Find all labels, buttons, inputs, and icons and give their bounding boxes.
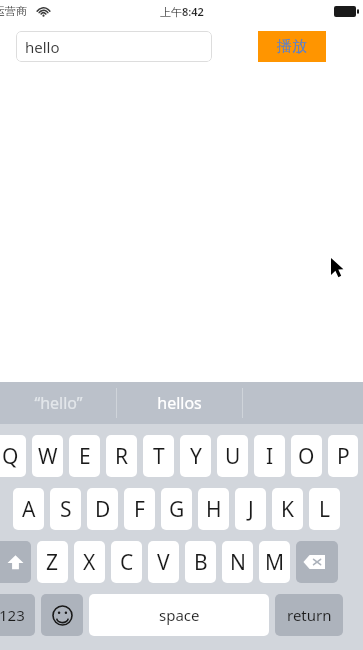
staticText: Q: [2, 442, 19, 471]
button[interactable]: O: [291, 435, 322, 477]
staticText: P: [337, 442, 350, 471]
staticText: N: [230, 548, 246, 577]
staticText: hello: [25, 37, 60, 57]
staticText: Z: [46, 548, 59, 577]
staticText: W: [38, 442, 58, 471]
staticText: V: [157, 548, 170, 577]
button[interactable]: return: [275, 594, 343, 636]
button[interactable]: U: [217, 435, 248, 477]
staticText: J: [248, 495, 254, 524]
staticText: K: [281, 495, 294, 524]
button[interactable]: Emoji keyboard: [41, 594, 83, 636]
button[interactable]: Backspace: [296, 541, 338, 583]
staticText: U: [225, 442, 241, 471]
button[interactable]: space: [89, 594, 269, 636]
button[interactable]: “hello”: [0, 382, 116, 424]
staticText: F: [134, 495, 145, 524]
staticText: G: [169, 495, 185, 524]
staticText: 播放: [277, 37, 307, 56]
button[interactable]: V: [148, 541, 179, 583]
staticText: L: [319, 495, 331, 524]
button[interactable]: M: [259, 541, 290, 583]
staticText: C: [120, 548, 134, 577]
staticText: D: [95, 495, 111, 524]
button[interactable]: L: [309, 488, 340, 530]
button[interactable]: 123: [0, 594, 35, 636]
staticText: “hello”: [34, 392, 83, 414]
staticText: return: [287, 605, 332, 625]
staticText: 123: [0, 605, 25, 625]
staticText: E: [79, 442, 91, 471]
button[interactable]: D: [87, 488, 118, 530]
staticText: X: [83, 548, 96, 577]
staticText: I: [266, 442, 274, 471]
staticText: Y: [190, 442, 202, 471]
button[interactable]: J: [235, 488, 266, 530]
button[interactable]: F: [124, 488, 155, 530]
button[interactable]: Q: [0, 435, 26, 477]
button[interactable]: hello: [16, 31, 212, 62]
button[interactable]: R: [106, 435, 137, 477]
button[interactable]: T: [143, 435, 174, 477]
button[interactable]: G: [161, 488, 192, 530]
button[interactable]: I: [254, 435, 285, 477]
staticText: O: [298, 442, 315, 471]
staticText: T: [153, 442, 165, 471]
button[interactable]: X: [74, 541, 105, 583]
button[interactable]: K: [272, 488, 303, 530]
button[interactable]: N: [222, 541, 253, 583]
staticText: A: [22, 495, 36, 524]
button[interactable]: S: [50, 488, 81, 530]
button[interactable]: B: [185, 541, 216, 583]
button[interactable]: P: [328, 435, 358, 477]
button[interactable]: E: [69, 435, 100, 477]
button[interactable]: A: [13, 488, 44, 530]
staticText: 运营商: [0, 4, 27, 18]
staticText: hellos: [157, 392, 202, 414]
staticText: B: [194, 548, 208, 577]
button[interactable]: C: [111, 541, 142, 583]
button[interactable]: H: [198, 488, 229, 530]
button[interactable]: hellos: [117, 382, 242, 424]
staticText: R: [115, 442, 129, 471]
staticText: 上午8:42: [160, 4, 204, 19]
staticText: H: [206, 495, 222, 524]
button[interactable]: 播放: [258, 31, 326, 62]
staticText: M: [265, 548, 285, 577]
button[interactable]: W: [32, 435, 63, 477]
staticText: S: [60, 495, 72, 524]
staticText: space: [159, 605, 200, 625]
button[interactable]: Shift: [0, 541, 31, 583]
button[interactable]: Y: [180, 435, 211, 477]
button[interactable]: Z: [37, 541, 68, 583]
